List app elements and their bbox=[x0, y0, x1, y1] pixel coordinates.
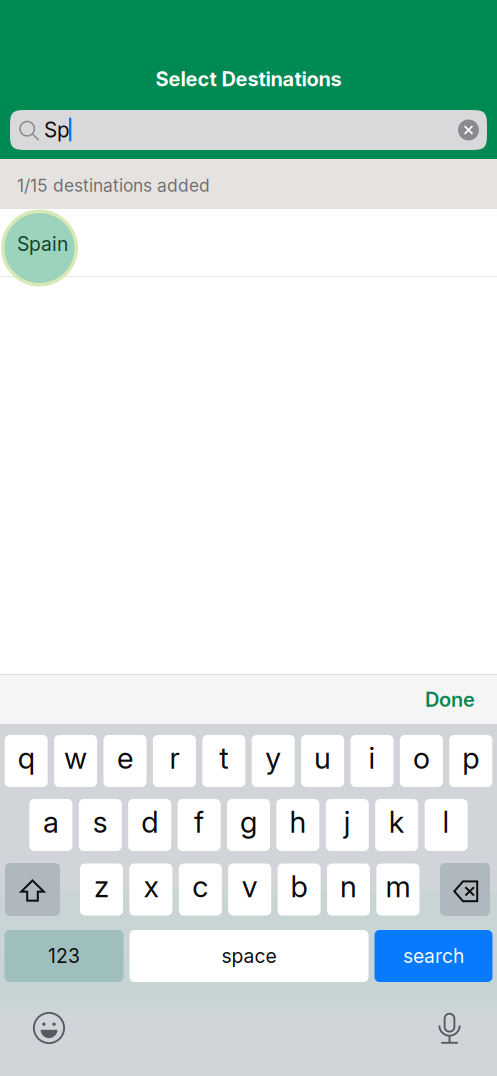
staticText: b bbox=[291, 869, 308, 904]
staticText: u bbox=[314, 740, 331, 776]
staticText: h bbox=[289, 804, 306, 840]
button[interactable]: n bbox=[327, 863, 370, 915]
button[interactable]: a bbox=[29, 799, 72, 851]
button[interactable]: space bbox=[129, 930, 368, 982]
staticText: g bbox=[240, 804, 257, 840]
button[interactable]: Done bbox=[415, 679, 485, 720]
staticText: e bbox=[117, 740, 133, 776]
button[interactable]: Dictation bbox=[438, 1011, 461, 1044]
staticText: n bbox=[340, 869, 357, 904]
button[interactable]: q bbox=[5, 735, 48, 787]
button[interactable]: g bbox=[227, 799, 270, 851]
staticText: Select Destinations bbox=[155, 67, 341, 91]
staticText: x bbox=[143, 869, 158, 904]
staticText: p bbox=[462, 740, 479, 776]
button[interactable]: Clear search text bbox=[457, 119, 478, 140]
button[interactable]: y bbox=[252, 735, 295, 787]
staticText: 123 bbox=[48, 944, 80, 968]
button[interactable]: u bbox=[301, 735, 344, 787]
button[interactable]: c bbox=[179, 863, 222, 915]
button[interactable]: f bbox=[178, 799, 221, 851]
button[interactable]: search bbox=[374, 930, 492, 982]
button[interactable]: Spain bbox=[0, 209, 497, 286]
staticText: q bbox=[18, 740, 35, 776]
button[interactable]: e bbox=[103, 735, 146, 787]
staticText: m bbox=[385, 869, 410, 904]
staticText: r bbox=[169, 740, 179, 776]
staticText: c bbox=[192, 869, 208, 904]
staticText: f bbox=[194, 804, 204, 840]
staticText: z bbox=[94, 869, 109, 904]
staticText: v bbox=[242, 869, 258, 904]
button[interactable]: v bbox=[228, 863, 271, 915]
button[interactable]: Shift bbox=[5, 863, 60, 916]
staticText: o bbox=[413, 740, 430, 776]
button[interactable]: o bbox=[400, 735, 443, 787]
button[interactable]: j bbox=[326, 799, 369, 851]
button[interactable]: k bbox=[375, 799, 418, 851]
staticText: w bbox=[64, 740, 87, 776]
button[interactable]: h bbox=[276, 799, 319, 851]
button[interactable]: p bbox=[449, 735, 492, 787]
staticText: a bbox=[43, 804, 59, 840]
button[interactable]: Delete bbox=[440, 863, 490, 916]
staticText: d bbox=[141, 804, 158, 840]
staticText: s bbox=[93, 804, 108, 840]
staticText: space bbox=[221, 944, 276, 968]
button[interactable]: i bbox=[350, 735, 393, 787]
button[interactable]: w bbox=[54, 735, 97, 787]
button[interactable]: d bbox=[128, 799, 171, 851]
button[interactable]: z bbox=[80, 863, 123, 915]
button[interactable]: Emoji keyboard bbox=[33, 1012, 65, 1044]
button[interactable]: l bbox=[425, 799, 468, 851]
button[interactable]: r bbox=[153, 735, 196, 787]
staticText: Spain bbox=[17, 232, 68, 256]
staticText: t bbox=[219, 740, 228, 776]
staticText: search bbox=[403, 944, 464, 968]
button[interactable]: x bbox=[129, 863, 172, 915]
staticText: Sp bbox=[44, 117, 70, 142]
staticText: l bbox=[443, 804, 450, 840]
button[interactable]: 123 bbox=[4, 930, 123, 982]
button[interactable]: m bbox=[376, 863, 419, 915]
staticText: j bbox=[344, 804, 351, 840]
staticText: k bbox=[389, 804, 405, 840]
button[interactable]: s bbox=[79, 799, 122, 851]
button[interactable]: b bbox=[278, 863, 321, 915]
button[interactable]: t bbox=[202, 735, 245, 787]
staticText: Done bbox=[425, 687, 475, 712]
staticText: i bbox=[368, 740, 375, 776]
staticText: 1/15 destinations added bbox=[17, 175, 210, 196]
staticText: y bbox=[265, 740, 281, 776]
